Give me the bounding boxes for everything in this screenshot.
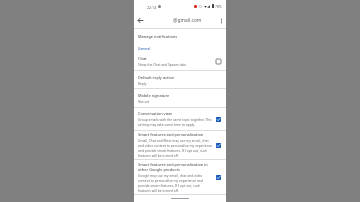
button[interactable]: Smart features and personalisation in ot… xyxy=(134,160,226,194)
staticText: Chat xyxy=(138,56,147,61)
button[interactable]: Manage notifications xyxy=(134,29,226,44)
button[interactable]: Back xyxy=(135,15,146,26)
button[interactable]: Default reply action xyxy=(134,71,226,88)
staticText: Conversation view xyxy=(138,111,172,116)
staticText: General xyxy=(138,46,151,50)
button[interactable]: More options xyxy=(216,15,227,26)
staticText: Smart features and personalisation xyxy=(138,132,204,137)
staticText: Smart features and personalisation in ot… xyxy=(138,162,213,172)
staticText: Mobile signature xyxy=(138,93,170,98)
staticText: Show the Chat and Spaces tabs xyxy=(138,62,187,66)
staticText: Not set xyxy=(138,99,150,103)
staticText: Google may use my email, chat and video … xyxy=(138,173,213,193)
button[interactable]: Chat xyxy=(134,52,226,70)
staticText: 22:14 xyxy=(147,5,157,10)
staticText: 78% xyxy=(215,4,222,8)
button[interactable]: Smart features and personalisation xyxy=(134,131,226,159)
staticText: @gmail.com xyxy=(173,17,202,24)
staticText: Group emails with the same topic togethe… xyxy=(138,117,213,127)
button[interactable]: Conversation view xyxy=(134,108,226,130)
staticText: Default reply action xyxy=(138,75,175,80)
staticText: Gmail, Chat and Meet may use my email, c… xyxy=(138,138,213,158)
button[interactable]: Mobile signature xyxy=(134,89,226,107)
staticText: Manage notifications xyxy=(138,34,178,39)
staticText: Reply xyxy=(138,81,147,85)
